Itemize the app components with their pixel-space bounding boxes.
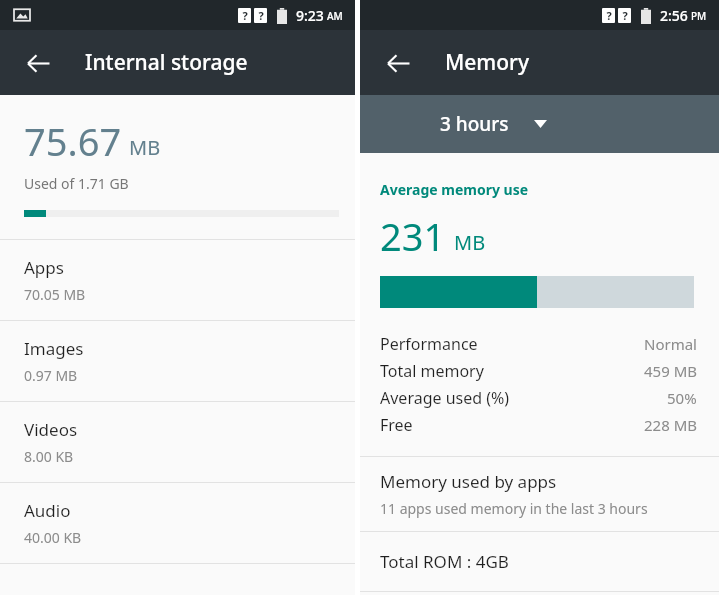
staticText: Memory used by apps	[380, 470, 557, 493]
staticText: 11 apps used memory in the last 3 hours	[380, 499, 648, 518]
staticText: 0.97 MB	[24, 366, 78, 385]
button[interactable]: Images	[0, 321, 355, 401]
staticText: ?	[606, 8, 612, 23]
button[interactable]: Videos	[0, 402, 355, 482]
staticText: Average memory use	[380, 180, 529, 199]
staticText: AM	[327, 9, 343, 23]
staticText: MB	[129, 134, 161, 161]
staticText: Performance	[380, 333, 478, 355]
button[interactable]: Memory used by apps	[360, 457, 719, 531]
staticText: ?	[258, 8, 264, 23]
staticText: 50%	[667, 388, 697, 408]
button[interactable]: Free	[360, 411, 719, 438]
staticText: 2:56	[660, 6, 688, 25]
staticText: Internal storage	[85, 48, 248, 77]
button[interactable]: Performance	[360, 330, 719, 357]
button[interactable]: Total memory	[360, 357, 719, 384]
button[interactable]: Back	[14, 39, 62, 87]
staticText: Audio	[24, 499, 71, 522]
button[interactable]: Apps	[0, 240, 355, 320]
staticText: Average used (%)	[380, 387, 510, 409]
button[interactable]: Total ROM : 4GB	[360, 532, 719, 591]
staticText: Images	[24, 337, 84, 360]
staticText: Total ROM : 4GB	[380, 550, 509, 573]
staticText: Free	[380, 414, 413, 436]
button[interactable]: Audio	[0, 483, 355, 563]
staticText: 70.05 MB	[24, 285, 86, 304]
staticText: 3 hours	[440, 111, 509, 137]
button[interactable]: Average used (%)	[360, 384, 719, 411]
staticText: PM	[691, 9, 707, 23]
staticText: 459 MB	[644, 361, 697, 381]
staticText: Videos	[24, 418, 78, 441]
staticText: 40.00 KB	[24, 528, 82, 547]
staticText: Used of 1.71 GB	[24, 174, 129, 193]
staticText: Normal	[644, 334, 697, 354]
button[interactable]: Back	[374, 39, 422, 87]
staticText: MB	[454, 229, 486, 256]
staticText: ?	[622, 8, 628, 23]
staticText: Total memory	[380, 360, 484, 382]
button[interactable]: 3 hours	[360, 95, 719, 153]
staticText: 231	[380, 210, 446, 262]
staticText: Memory	[445, 48, 530, 77]
staticText: 228 MB	[644, 415, 697, 435]
staticText: 9:23	[296, 6, 324, 25]
staticText: 75.67	[24, 115, 122, 167]
staticText: Apps	[24, 256, 64, 279]
staticText: ?	[242, 8, 248, 23]
staticText: 8.00 KB	[24, 447, 74, 466]
